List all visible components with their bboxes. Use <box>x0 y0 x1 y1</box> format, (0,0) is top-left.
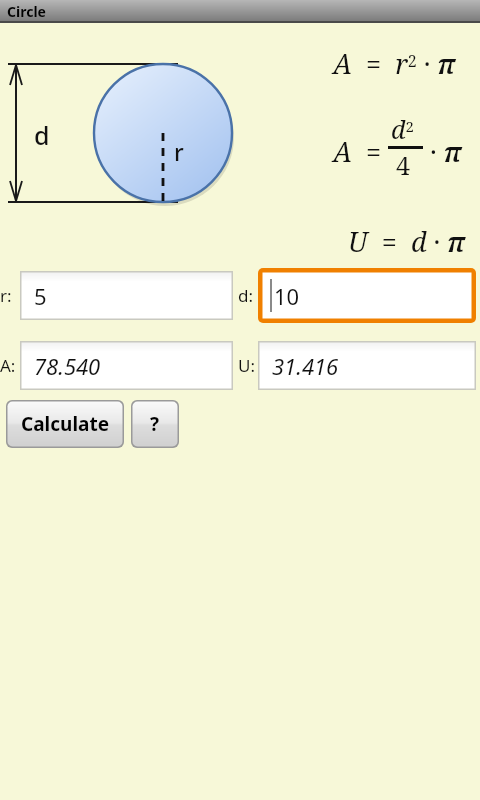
staticText: Circle <box>7 2 46 21</box>
staticText: A = <box>333 133 382 170</box>
staticText: A = r2 · π <box>333 45 456 82</box>
staticText: r: <box>0 284 12 307</box>
button[interactable]: d: value 10 <box>258 268 476 323</box>
staticText: 5 <box>34 281 47 311</box>
button[interactable]: U: value 31.416 <box>258 341 476 390</box>
staticText: Calculate <box>21 411 110 437</box>
staticText: d <box>34 118 50 152</box>
staticText: r <box>174 136 184 167</box>
staticText: d: <box>238 284 254 307</box>
staticText: A: <box>0 354 16 377</box>
staticText: ? <box>150 411 160 437</box>
button[interactable]: Calculate <box>6 400 124 448</box>
button[interactable]: Help <box>131 400 179 448</box>
staticText: U: <box>238 354 255 377</box>
staticText: 31.416 <box>272 351 339 381</box>
staticText: 4 <box>396 148 410 182</box>
button[interactable]: A: value 78.540 <box>20 341 233 390</box>
button[interactable]: r: value 5 <box>20 271 233 320</box>
staticText: 78.540 <box>34 351 101 381</box>
staticText: d2 <box>391 112 414 146</box>
staticText: 10 <box>274 281 300 311</box>
staticText: U = d · π <box>348 223 466 260</box>
staticText: · π <box>430 133 462 170</box>
